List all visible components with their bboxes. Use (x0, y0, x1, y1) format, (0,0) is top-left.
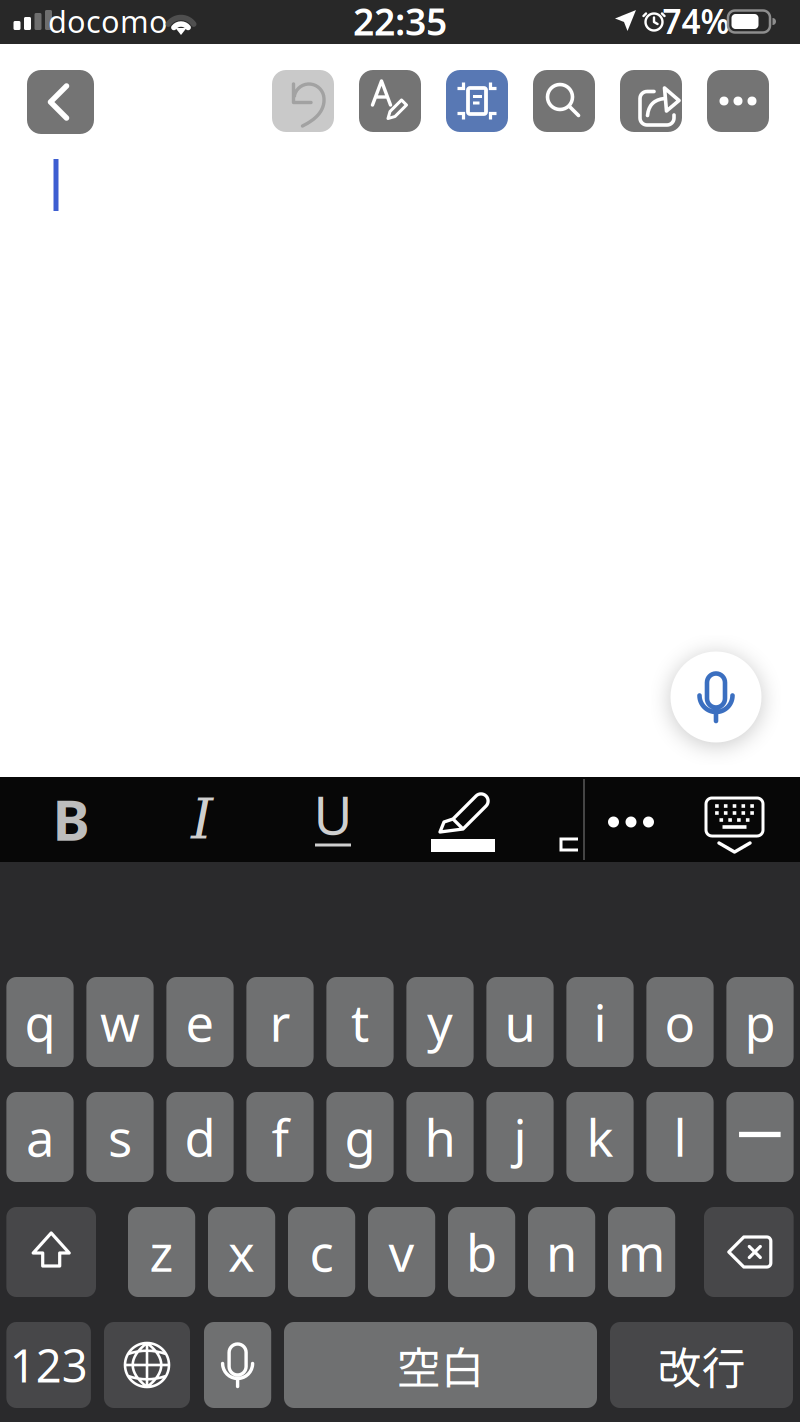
button[interactable]: j (486, 1092, 554, 1182)
button[interactable]: 空白 (284, 1322, 597, 1408)
button[interactable] (704, 791, 764, 857)
button[interactable]: i (566, 977, 634, 1067)
button[interactable] (591, 779, 671, 864)
button[interactable] (707, 70, 769, 132)
button[interactable]: d (166, 1092, 234, 1182)
button[interactable]: s (86, 1092, 154, 1182)
button[interactable]: g (326, 1092, 394, 1182)
button[interactable]: k (566, 1092, 634, 1182)
button[interactable]: c (288, 1207, 355, 1297)
staticText: x (228, 1218, 255, 1286)
button[interactable]: o (646, 977, 714, 1067)
button[interactable] (704, 1207, 794, 1297)
staticText: y (427, 988, 453, 1056)
button[interactable] (104, 1322, 190, 1408)
button[interactable]: b (448, 1207, 515, 1297)
button[interactable]: q (6, 977, 74, 1067)
button[interactable]: ー (726, 1092, 794, 1182)
button[interactable]: z (128, 1207, 195, 1297)
button[interactable]: p (726, 977, 794, 1067)
button[interactable]: a (6, 1092, 74, 1182)
button[interactable] (620, 70, 682, 132)
staticText: 123 (10, 1335, 88, 1395)
button[interactable] (667, 648, 765, 746)
button[interactable]: w (86, 977, 154, 1067)
staticText: l (673, 1103, 686, 1171)
staticText: docomo (48, 1, 168, 41)
button[interactable] (6, 1207, 96, 1297)
staticText: c (310, 1218, 334, 1286)
button[interactable] (272, 70, 334, 132)
staticText: h (424, 1103, 455, 1171)
button[interactable]: v (368, 1207, 435, 1297)
button[interactable]: r (246, 977, 314, 1067)
staticText: m (618, 1218, 665, 1286)
staticText: 74% (662, 0, 729, 43)
button[interactable] (27, 70, 94, 134)
staticText: p (744, 988, 775, 1056)
button[interactable]: x (208, 1207, 275, 1297)
staticText: z (150, 1218, 174, 1286)
button[interactable] (418, 777, 508, 862)
staticText: ー (734, 1106, 785, 1168)
staticText: B (52, 782, 89, 856)
staticText: r (269, 988, 290, 1056)
staticText: w (100, 988, 140, 1056)
staticText: t (351, 988, 369, 1056)
button[interactable]: 123 (6, 1322, 91, 1408)
staticText: U (313, 779, 352, 849)
staticText: 空白 (396, 1333, 484, 1397)
staticText: s (108, 1103, 132, 1171)
staticText: i (593, 988, 606, 1056)
staticText: e (185, 988, 214, 1056)
button[interactable]: u (486, 977, 554, 1067)
button[interactable]: y (406, 977, 474, 1067)
staticText: g (344, 1103, 375, 1171)
button[interactable] (359, 70, 421, 132)
staticText: k (586, 1103, 613, 1171)
button[interactable]: 改行 (610, 1322, 793, 1408)
button[interactable]: e (166, 977, 234, 1067)
button[interactable]: B (31, 776, 111, 861)
staticText: 改行 (657, 1333, 745, 1397)
staticText: n (546, 1218, 577, 1286)
staticText: a (26, 1103, 54, 1171)
button[interactable] (204, 1322, 271, 1408)
button[interactable]: U (293, 776, 373, 861)
button[interactable]: t (326, 977, 394, 1067)
button[interactable]: I (162, 776, 242, 861)
staticText: f (271, 1103, 288, 1171)
button[interactable] (533, 70, 595, 132)
staticText: d (184, 1103, 215, 1171)
staticText: 22:35 (353, 0, 447, 46)
staticText: u (504, 988, 535, 1056)
staticText: I (191, 786, 213, 852)
staticText: v (389, 1218, 415, 1286)
button[interactable]: f (246, 1092, 314, 1182)
button[interactable]: n (528, 1207, 595, 1297)
button[interactable]: h (406, 1092, 474, 1182)
button[interactable] (446, 70, 508, 132)
staticText: b (466, 1218, 497, 1286)
staticText: j (513, 1103, 526, 1171)
staticText: q (24, 988, 55, 1056)
button[interactable]: l (646, 1092, 714, 1182)
button[interactable]: m (608, 1207, 675, 1297)
staticText: o (664, 988, 695, 1056)
